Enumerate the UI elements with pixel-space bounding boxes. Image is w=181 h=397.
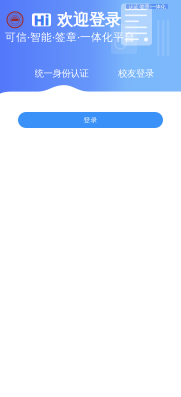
staticText: 统一身份认证	[34, 68, 88, 79]
button[interactable]: 校友登录	[105, 67, 167, 80]
staticText: 可信·智能·签章·一体化平台	[5, 30, 135, 44]
staticText: 校友登录	[118, 68, 154, 79]
staticText: 认证·签章·一体化	[128, 3, 165, 10]
staticText: 登录	[83, 116, 97, 124]
staticText: 欢迎登录	[57, 10, 121, 30]
button[interactable]: 登录	[18, 112, 163, 128]
staticText: Hi	[33, 10, 49, 30]
button[interactable]: 统一身份认证	[18, 67, 105, 80]
